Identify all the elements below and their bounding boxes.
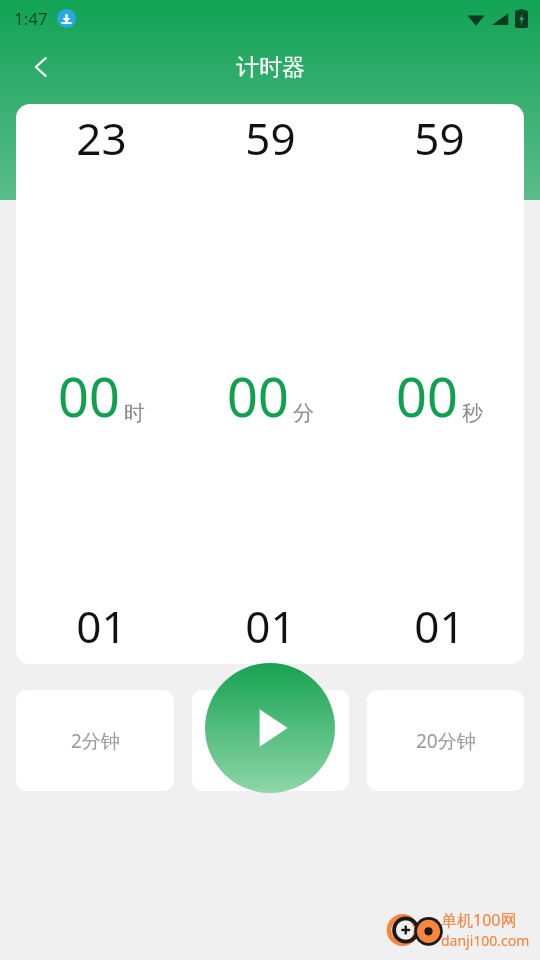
staticText: 20分钟 [416, 728, 476, 754]
staticText: 23 [76, 108, 127, 164]
staticText: danji100.com [441, 931, 530, 950]
staticText: 00 [227, 359, 289, 433]
staticText: 计时器 [236, 53, 305, 82]
staticText: 01 [76, 596, 127, 652]
button[interactable]: 10分钟 [192, 690, 349, 791]
staticText: 01 [414, 596, 465, 652]
staticText: 分 [293, 400, 314, 426]
staticText: 00 [396, 359, 458, 433]
staticText: 59 [414, 108, 465, 164]
staticText: 单机100网 [441, 909, 517, 931]
button[interactable]: 2分钟 [16, 690, 174, 791]
staticText: 01 [245, 596, 296, 652]
staticText: 1:47 [14, 7, 48, 30]
staticText: 00 [58, 359, 120, 433]
staticText: 59 [245, 108, 296, 164]
button[interactable]: Back [16, 42, 66, 92]
staticText: 2分钟 [71, 728, 120, 754]
staticText: 10分钟 [241, 728, 301, 754]
staticText: 秒 [462, 400, 483, 426]
button[interactable]: 20分钟 [367, 690, 524, 791]
staticText: 时 [124, 400, 145, 426]
button[interactable]: Start [205, 663, 335, 793]
